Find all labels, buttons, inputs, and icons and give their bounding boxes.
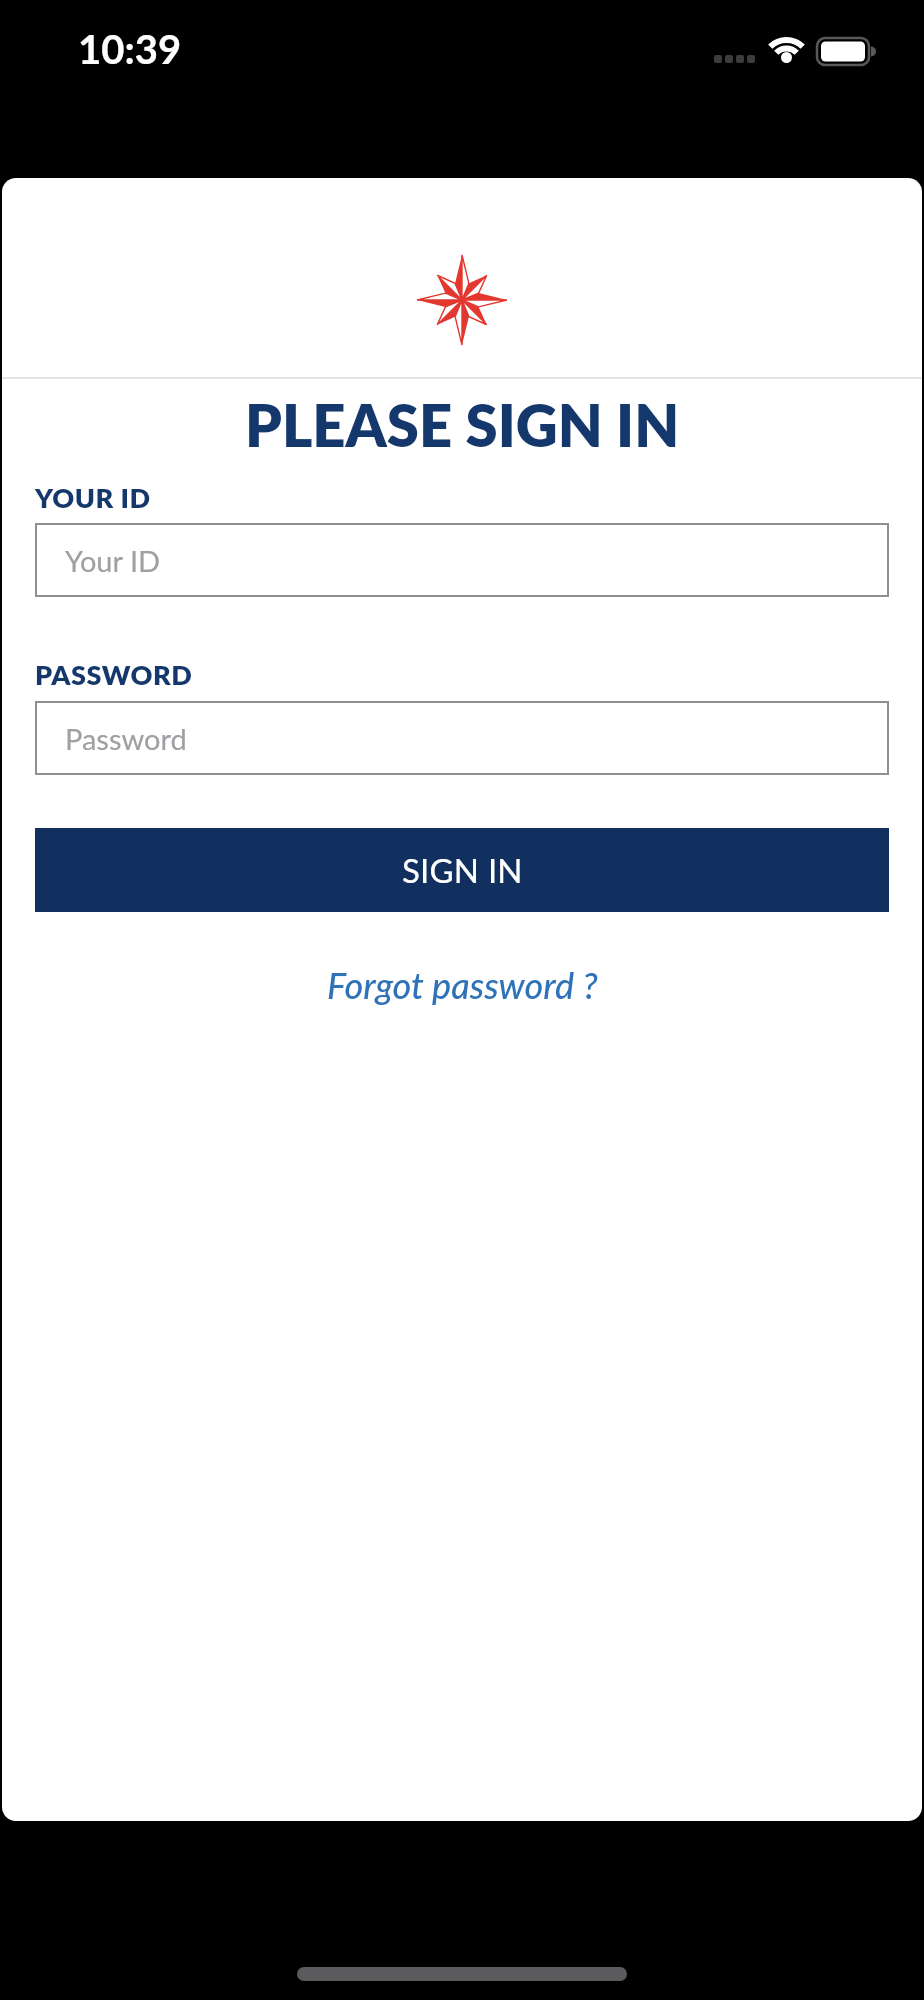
staticText: SIGN IN [402,850,523,890]
button[interactable]: Forgot password ? [327,963,598,1006]
staticText: PASSWORD [35,658,193,690]
staticText: PLEASE SIGN IN [245,390,680,460]
staticText: Password [65,721,187,756]
staticText: Forgot password ? [327,963,598,1006]
button[interactable]: SIGN IN [35,828,889,912]
staticText: YOUR ID [35,481,151,513]
staticText: Your ID [65,543,161,578]
button[interactable]: Password [35,701,889,775]
staticText: 10:39 [78,25,182,73]
button[interactable]: Your ID [35,523,889,597]
